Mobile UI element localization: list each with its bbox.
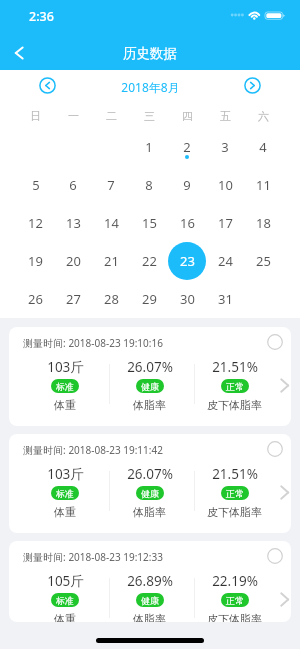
staticText: 103斤 [47,358,84,376]
staticText: 13 [66,214,81,232]
button[interactable]: 21 [92,242,130,280]
button[interactable]: 测量时间: 2018-08-23 19:10:16 [9,327,291,426]
button[interactable]: 30 [168,280,206,318]
button[interactable]: 3 [206,128,244,166]
staticText: 21.51% [212,358,258,376]
staticText: 2018年8月 [121,79,180,95]
button[interactable]: 26 [17,280,54,318]
staticText: 测量时间: 2018-08-23 19:11:42 [23,443,163,457]
staticText: 11 [256,176,271,194]
staticText: 标准 [56,488,74,499]
staticText: 7 [107,176,115,194]
staticText: 4 [259,138,267,156]
button[interactable]: 12 [17,204,54,242]
staticText: 14 [104,214,119,232]
staticText: 健康 [141,488,159,499]
button[interactable]: 14 [92,204,130,242]
staticText: 健康 [141,595,159,606]
staticText: 23 [180,252,195,270]
button[interactable]: 24 [206,242,244,280]
button[interactable]: 27 [54,280,92,318]
staticText: 体重 [54,505,76,519]
staticText: 健康 [141,381,159,392]
staticText: 26.89% [127,572,173,590]
staticText: 二 [106,109,117,123]
button[interactable]: 15 [130,204,168,242]
staticText: 18 [256,214,271,232]
button[interactable]: 18 [244,204,282,242]
button[interactable]: 16 [168,204,206,242]
button[interactable]: 13 [54,204,92,242]
staticText: 10 [218,176,233,194]
button[interactable]: 6 [54,166,92,204]
staticText: 3 [221,138,229,156]
button[interactable]: 4 [244,128,282,166]
staticText: 一 [68,109,79,123]
button[interactable]: 10 [206,166,244,204]
staticText: 31 [218,290,233,308]
staticText: 体脂率 [133,505,166,519]
staticText: 正常 [226,595,244,606]
staticText: 30 [180,290,195,308]
staticText: 26 [28,290,43,308]
staticText: 26.07% [127,465,173,483]
staticText: 皮下体脂率 [207,505,262,519]
staticText: 22.19% [212,572,258,590]
staticText: 24 [218,252,233,270]
staticText: 皮下体脂率 [207,398,262,412]
button[interactable]: Back [1,35,37,71]
staticText: 2:36 [29,8,54,25]
button[interactable]: 29 [130,280,168,318]
button[interactable]: 9 [168,166,206,204]
staticText: 五 [220,109,231,123]
staticText: 6 [69,176,77,194]
staticText: 皮下体脂率 [207,612,262,622]
button[interactable]: 2 [168,128,206,166]
button[interactable]: 17 [206,204,244,242]
staticText: 5 [32,176,40,194]
button[interactable]: 1 [130,128,168,166]
button[interactable]: 测量时间: 2018-08-23 19:12:33 [9,541,291,622]
staticText: 测量时间: 2018-08-23 19:12:33 [23,550,163,564]
staticText: 四 [182,109,193,123]
staticText: 8 [145,176,153,194]
button[interactable]: 11 [244,166,282,204]
button[interactable]: 23 [168,242,206,280]
staticText: 2 [183,138,191,156]
staticText: 三 [144,109,155,123]
staticText: 历史数据 [123,45,177,62]
staticText: 22 [142,252,157,270]
staticText: 正常 [226,381,244,392]
staticText: 105斤 [47,572,84,590]
button[interactable]: 25 [244,242,282,280]
button[interactable]: Previous month [39,77,56,94]
button[interactable]: 19 [17,242,54,280]
button[interactable]: 测量时间: 2018-08-23 19:11:42 [9,434,291,533]
staticText: 六 [258,109,269,123]
staticText: 16 [180,214,195,232]
staticText: 日 [30,109,41,123]
staticText: 21.51% [212,465,258,483]
button[interactable]: 5 [17,166,54,204]
staticText: 标准 [56,381,74,392]
staticText: 17 [218,214,233,232]
staticText: 21 [104,252,119,270]
button[interactable]: 28 [92,280,130,318]
staticText: 19 [28,252,43,270]
button[interactable]: 22 [130,242,168,280]
staticText: 15 [142,214,157,232]
staticText: 正常 [226,488,244,499]
staticText: 29 [142,290,157,308]
staticText: 25 [256,252,271,270]
button[interactable]: 31 [206,280,244,318]
staticText: 12 [28,214,43,232]
button[interactable]: 20 [54,242,92,280]
staticText: 20 [66,252,81,270]
staticText: 体重 [54,398,76,412]
button[interactable]: 7 [92,166,130,204]
button[interactable]: Next month [244,77,261,94]
staticText: 体重 [54,612,76,622]
staticText: 26.07% [127,358,173,376]
button[interactable]: 8 [130,166,168,204]
staticText: 103斤 [47,465,84,483]
